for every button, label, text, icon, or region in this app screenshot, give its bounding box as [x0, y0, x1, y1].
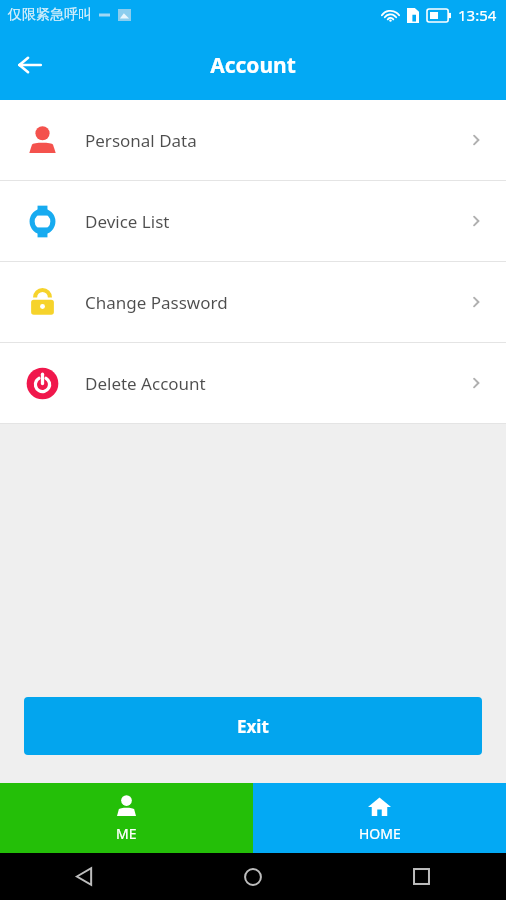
button[interactable]: Delete Account: [0, 343, 506, 423]
button[interactable]: Change Password: [0, 262, 506, 342]
button[interactable]: Back: [0, 853, 168, 900]
staticText: Exit: [237, 715, 269, 738]
button[interactable]: Personal Data: [0, 100, 506, 180]
button[interactable]: Home: [168, 853, 337, 900]
staticText: Account: [210, 51, 296, 80]
button[interactable]: Back: [8, 43, 52, 87]
staticText: 仅限紧急呼叫: [8, 6, 92, 24]
staticText: HOME: [359, 824, 401, 843]
button[interactable]: Device List: [0, 181, 506, 261]
button[interactable]: Exit: [24, 697, 482, 755]
staticText: Personal Data: [85, 129, 197, 152]
button[interactable]: Recents: [337, 853, 506, 900]
staticText: ME: [116, 824, 137, 843]
button[interactable]: ME: [0, 783, 253, 853]
staticText: Delete Account: [85, 372, 206, 395]
staticText: Device List: [85, 210, 170, 233]
button[interactable]: HOME: [253, 783, 506, 853]
staticText: 13:54: [458, 5, 497, 25]
staticText: Change Password: [85, 291, 228, 314]
